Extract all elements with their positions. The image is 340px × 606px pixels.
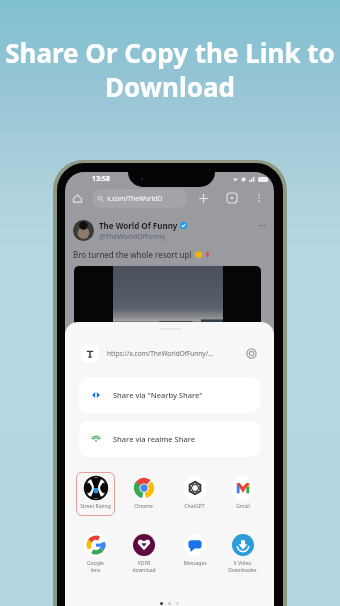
button[interactable]: Tabs (225, 191, 239, 205)
staticText: Share via "Nearby Share" (113, 390, 203, 400)
staticText: @TheWorldOfFunny (99, 232, 166, 242)
button[interactable]: https://x.com/TheWorldOfFunny/... (79, 342, 260, 365)
staticText: Google lens (87, 560, 104, 573)
button[interactable]: More options (252, 191, 266, 205)
button[interactable]: VDFB download (124, 529, 163, 573)
staticText: Share via realme Share (113, 434, 196, 444)
button[interactable]: Share via "Nearby Share" (79, 377, 260, 413)
button[interactable]: Gmail (223, 472, 262, 516)
staticText: x.com/TheWorldO (107, 194, 163, 203)
staticText: X Video Downloader (228, 560, 257, 573)
staticText: ChatGPT (184, 503, 205, 510)
button[interactable]: ChatGPT (175, 472, 214, 516)
button[interactable]: Home (70, 191, 85, 206)
staticText: Share Or Copy the Link to Download (2, 35, 338, 104)
staticText: VDFB download (132, 560, 156, 573)
button[interactable]: Chrome (124, 472, 163, 516)
staticText: 13:58 (92, 174, 110, 184)
button[interactable]: New tab (196, 191, 210, 205)
button[interactable]: Street Rating (76, 472, 115, 516)
button[interactable]: X Video Downloader (223, 529, 262, 573)
staticText: The World Of Funny (99, 220, 178, 231)
button[interactable]: Share via realme Share (79, 421, 260, 457)
other: Copy link (246, 348, 257, 359)
staticText: Gmail (236, 503, 250, 510)
staticText: Chrome (134, 503, 153, 510)
staticText: Street Rating (80, 503, 111, 510)
staticText: Messages (183, 560, 207, 567)
staticText: ••• (259, 222, 266, 230)
button[interactable]: x.com/TheWorldO (92, 189, 187, 208)
staticText: https://x.com/TheWorldOfFunny/... (107, 349, 214, 358)
button[interactable]: Google lens (76, 529, 115, 573)
button[interactable]: Messages (175, 529, 214, 573)
staticText: Bro turned the whole resort upl (73, 249, 192, 260)
